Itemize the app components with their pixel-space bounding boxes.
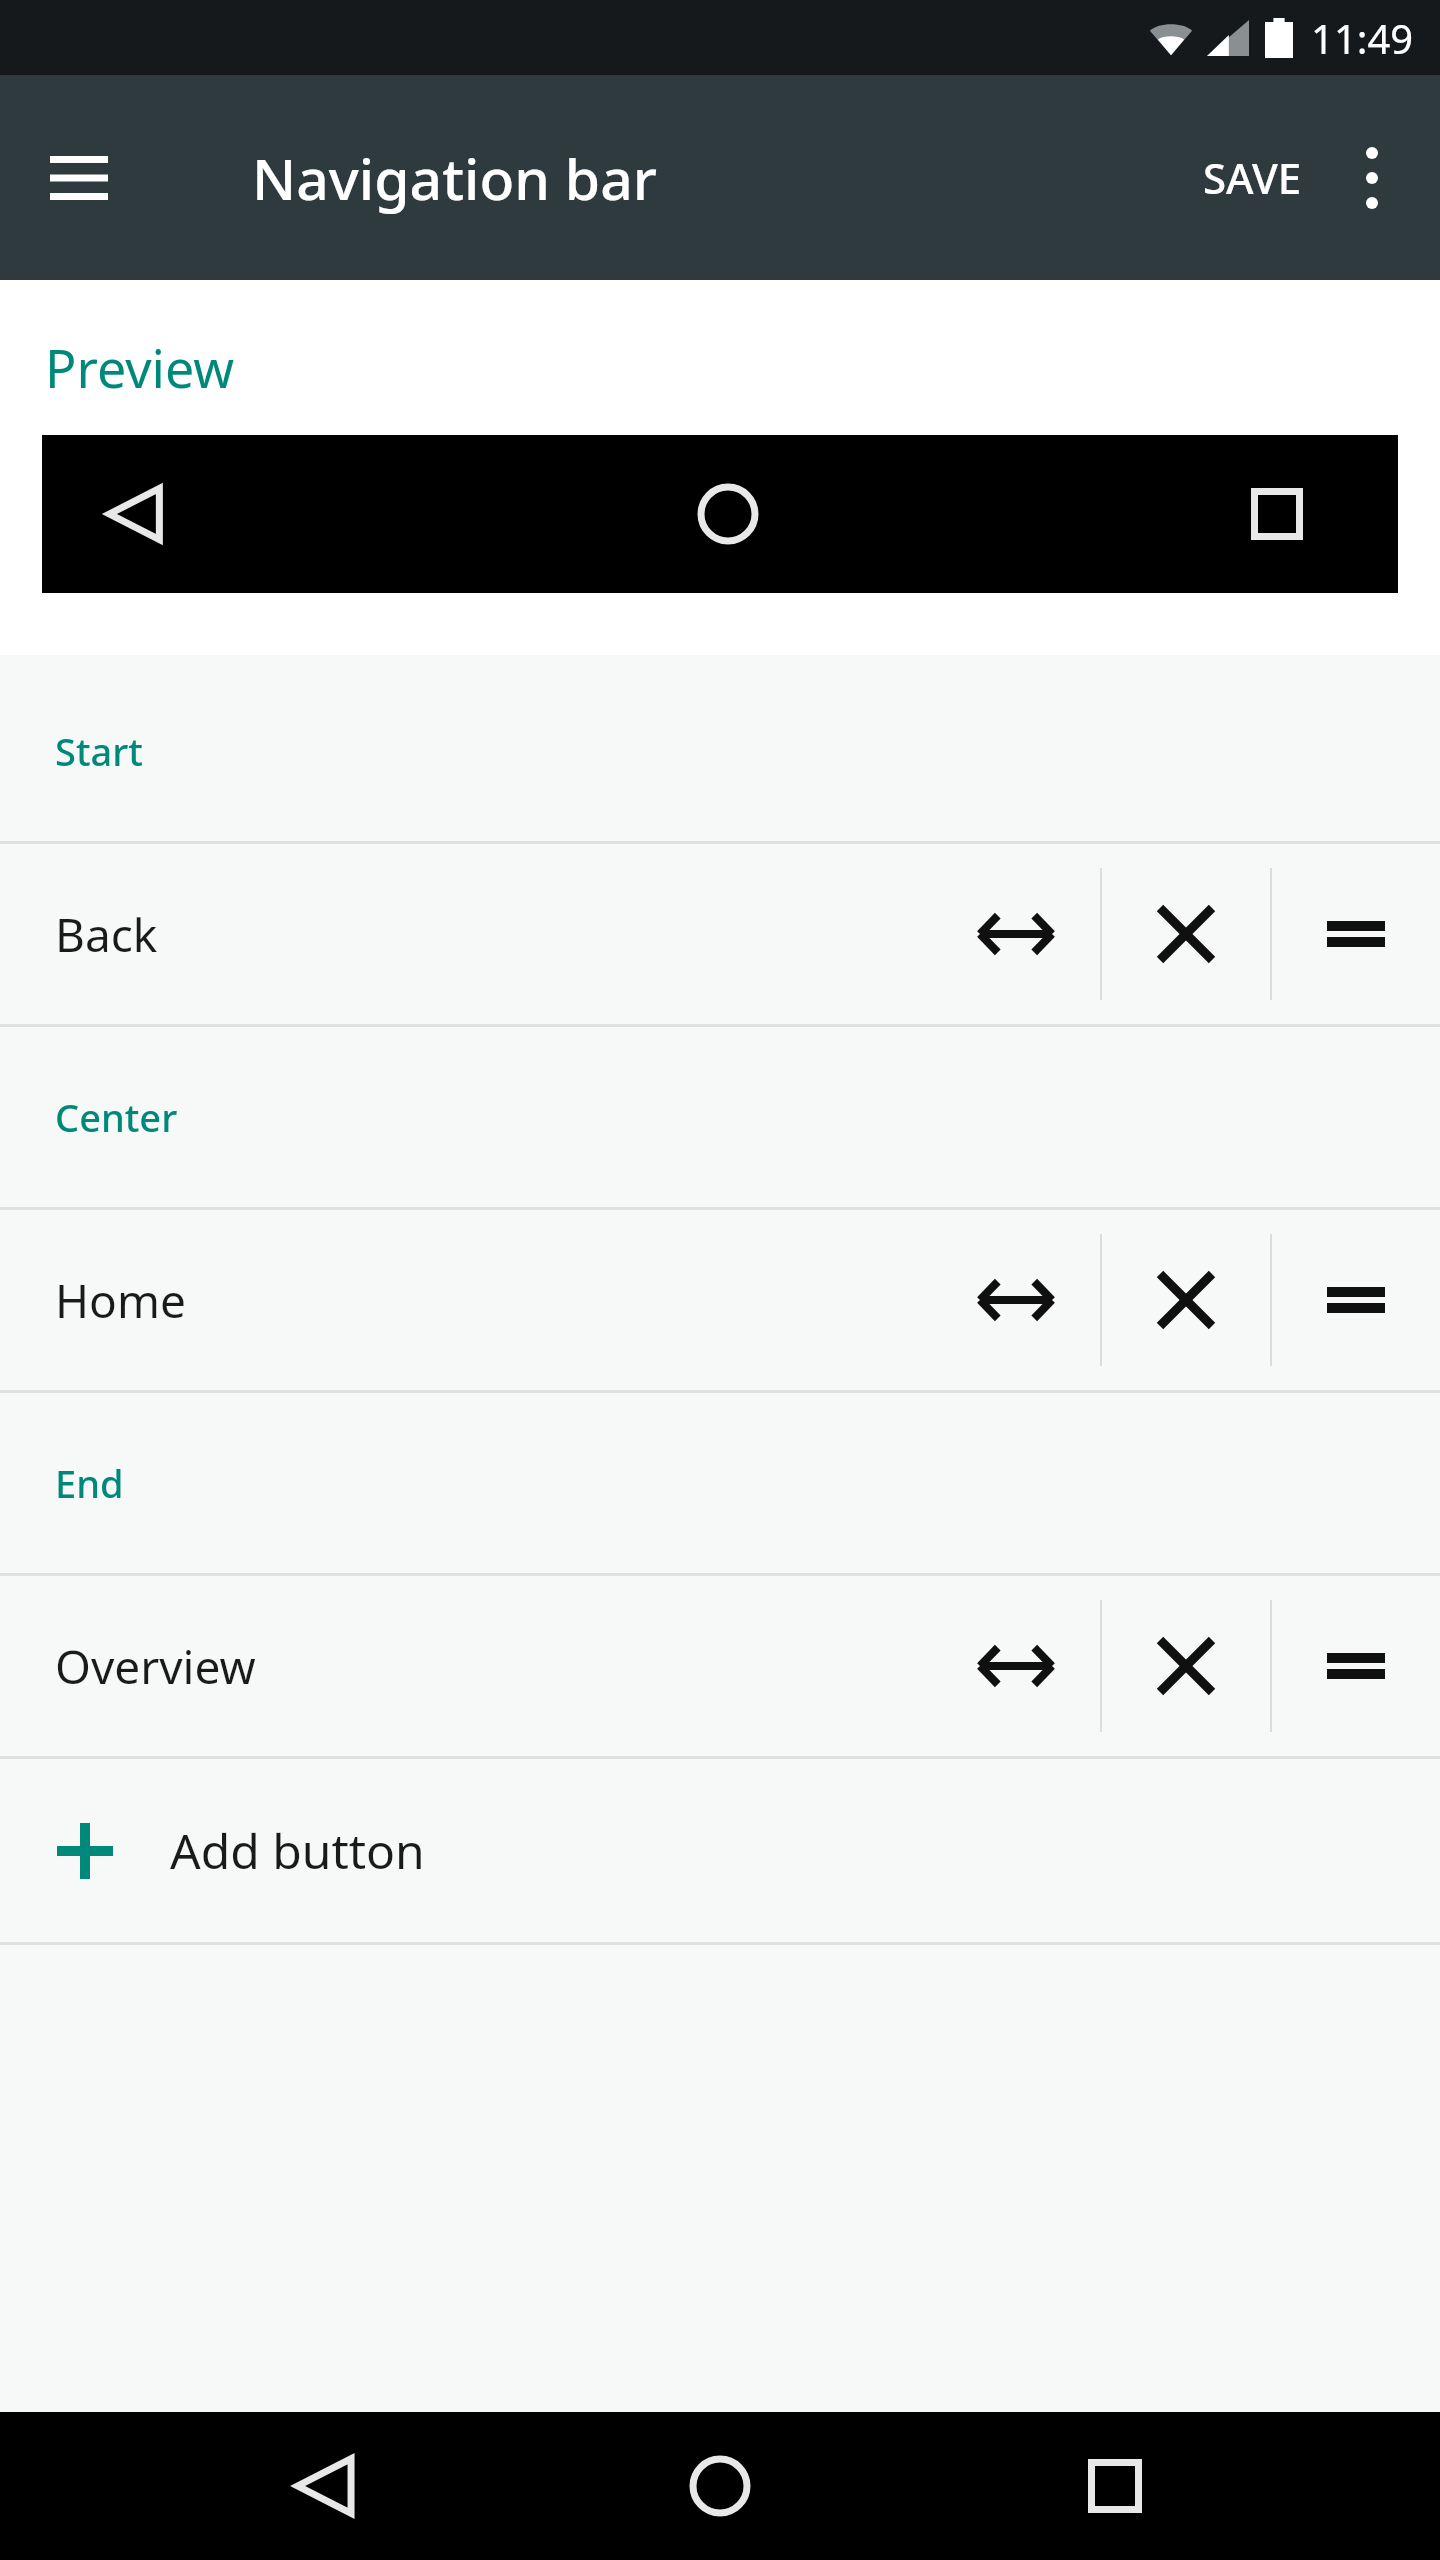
- button[interactable]: Home: [673, 459, 783, 569]
- button[interactable]: Home: [650, 2416, 790, 2556]
- staticText: SAVE: [1203, 149, 1302, 206]
- staticText: Center: [55, 1091, 178, 1143]
- staticText: Preview: [45, 332, 235, 403]
- button[interactable]: Adjust width of Home: [932, 1210, 1100, 1390]
- staticText: Start: [55, 725, 143, 777]
- staticText: Navigation bar: [252, 139, 657, 217]
- button[interactable]: Adjust width of Overview: [932, 1576, 1100, 1756]
- button[interactable]: Overview: [0, 1576, 1440, 1756]
- staticText: 11:49: [1311, 11, 1414, 65]
- staticText: Add button: [170, 1818, 425, 1883]
- button[interactable]: Remove Overview: [1102, 1576, 1270, 1756]
- button[interactable]: Reorder Overview: [1272, 1576, 1440, 1756]
- button[interactable]: Overview: [1045, 2416, 1185, 2556]
- button[interactable]: Back: [0, 844, 1440, 1024]
- button[interactable]: Overview: [1222, 459, 1332, 569]
- button[interactable]: More options: [1322, 128, 1422, 228]
- button[interactable]: Reorder Back: [1272, 844, 1440, 1024]
- button[interactable]: Reorder Home: [1272, 1210, 1440, 1390]
- button[interactable]: Back: [255, 2416, 395, 2556]
- button[interactable]: Home: [0, 1210, 1440, 1390]
- button[interactable]: Open navigation drawer: [24, 123, 134, 233]
- staticText: Back: [55, 903, 932, 966]
- button[interactable]: Adjust width of Back: [932, 844, 1100, 1024]
- button[interactable]: Remove Back: [1102, 844, 1270, 1024]
- button[interactable]: Remove Home: [1102, 1210, 1270, 1390]
- staticText: Overview: [55, 1635, 932, 1698]
- staticText: Home: [55, 1269, 932, 1332]
- staticText: End: [55, 1457, 124, 1509]
- button[interactable]: Add button: [0, 1759, 1440, 1942]
- button[interactable]: SAVE: [1183, 125, 1322, 230]
- button[interactable]: Back: [80, 459, 190, 569]
